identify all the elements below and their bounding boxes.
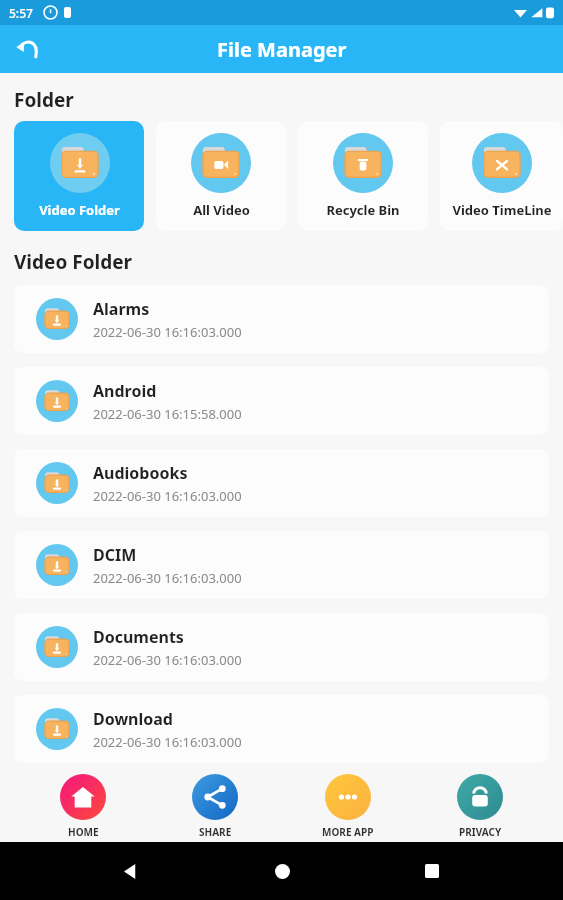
staticText: Recycle Bin (326, 201, 400, 219)
button[interactable]: Home (262, 851, 302, 891)
staticText: Video Folder (39, 201, 120, 219)
staticText: DCIM (93, 544, 137, 566)
staticText: File Manager (217, 36, 347, 63)
staticText: 2022-06-30 16:16:03.000 (93, 733, 242, 751)
staticText: MORE APP (322, 825, 374, 839)
staticText: 2022-06-30 16:16:03.000 (93, 569, 242, 587)
button[interactable]: SHARE (165, 774, 265, 839)
staticText: 5:57 (9, 5, 33, 21)
button[interactable]: Audiobooks (14, 449, 549, 517)
button[interactable]: MORE APP (298, 774, 398, 839)
staticText: SHARE (199, 825, 232, 839)
staticText: Android (93, 380, 157, 402)
staticText: 2022-06-30 16:15:58.000 (93, 405, 242, 423)
staticText: Audiobooks (93, 462, 188, 484)
staticText: Alarms (93, 298, 150, 320)
staticText: Documents (93, 626, 184, 648)
staticText: 2022-06-30 16:16:03.000 (93, 487, 242, 505)
staticText: PRIVACY (459, 825, 502, 839)
staticText: HOME (68, 825, 99, 839)
button[interactable]: Android (14, 367, 549, 435)
button[interactable]: Back (111, 851, 151, 891)
button[interactable]: PRIVACY (430, 774, 530, 839)
staticText: 2022-06-30 16:16:03.000 (93, 651, 242, 669)
button[interactable]: HOME (33, 774, 133, 839)
button[interactable]: All Video (156, 121, 286, 231)
button[interactable]: Video TimeLine (440, 121, 563, 231)
staticText: Download (93, 708, 173, 730)
staticText: Video TimeLine (452, 201, 552, 219)
staticText: Video Folder (14, 249, 133, 275)
staticText: 2022-06-30 16:16:03.000 (93, 323, 242, 341)
staticText: All Video (193, 201, 250, 219)
button[interactable]: Recents (412, 851, 452, 891)
button[interactable]: Alarms (14, 285, 549, 353)
button[interactable]: Documents (14, 613, 549, 681)
button[interactable]: Video Folder (14, 121, 144, 231)
staticText: Folder (14, 87, 74, 113)
button[interactable]: Recycle Bin (298, 121, 428, 231)
button[interactable]: Download (14, 695, 549, 763)
button[interactable]: Back (6, 27, 50, 71)
button[interactable]: DCIM (14, 531, 549, 599)
